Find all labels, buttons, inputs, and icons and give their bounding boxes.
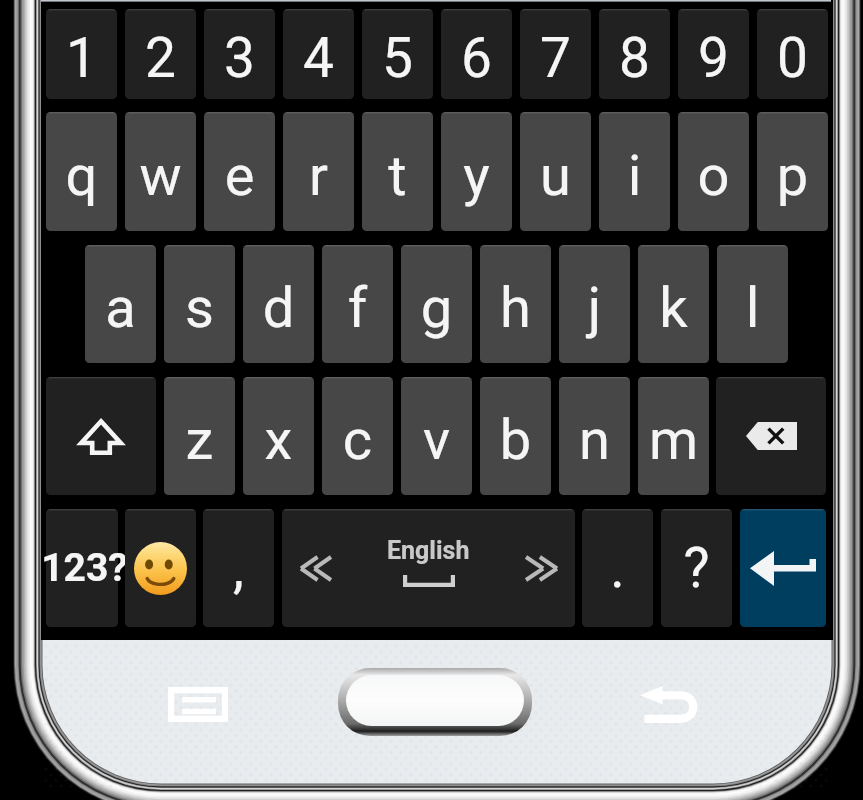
button[interactable]: c bbox=[322, 377, 393, 495]
button[interactable]: j bbox=[559, 245, 630, 363]
button[interactable]: . bbox=[582, 509, 653, 627]
staticText: i bbox=[599, 143, 670, 209]
button[interactable]: Enter bbox=[740, 509, 826, 627]
staticText: y bbox=[441, 143, 512, 209]
button[interactable]: f bbox=[322, 245, 393, 363]
button[interactable]: Delete bbox=[716, 377, 826, 495]
staticText: 2 bbox=[125, 26, 196, 90]
staticText: h bbox=[480, 275, 551, 341]
staticText: d bbox=[243, 275, 314, 341]
staticText: n bbox=[559, 407, 630, 473]
staticText: 3 bbox=[204, 26, 275, 90]
button[interactable]: 5 bbox=[362, 9, 433, 99]
button[interactable]: Shift bbox=[46, 377, 156, 495]
button[interactable]: 6 bbox=[441, 9, 512, 99]
staticText: r bbox=[283, 143, 354, 209]
button[interactable]: q bbox=[46, 112, 117, 231]
staticText: j bbox=[559, 275, 630, 341]
button[interactable]: p bbox=[757, 112, 828, 231]
button[interactable]: e bbox=[204, 112, 275, 231]
button[interactable]: u bbox=[520, 112, 591, 231]
staticText: k bbox=[638, 275, 709, 341]
button[interactable]: Space bbox=[282, 509, 575, 627]
staticText: b bbox=[480, 407, 551, 473]
button[interactable]: 7 bbox=[520, 9, 591, 99]
staticText: x bbox=[243, 407, 314, 473]
button[interactable]: l bbox=[717, 245, 788, 363]
button[interactable]: h bbox=[480, 245, 551, 363]
button[interactable]: ? bbox=[661, 509, 732, 627]
button[interactable]: 123? bbox=[46, 509, 118, 627]
button[interactable]: x bbox=[243, 377, 314, 495]
staticText: 1 bbox=[46, 26, 117, 90]
staticText: a bbox=[85, 275, 156, 341]
button[interactable]: a bbox=[85, 245, 156, 363]
staticText: o bbox=[678, 143, 749, 209]
staticText: e bbox=[204, 143, 275, 209]
staticText: f bbox=[322, 275, 393, 341]
staticText: w bbox=[125, 143, 196, 209]
button[interactable]: 8 bbox=[599, 9, 670, 99]
button[interactable]: k bbox=[638, 245, 709, 363]
button[interactable]: w bbox=[125, 112, 196, 231]
button[interactable]: 1 bbox=[46, 9, 117, 99]
staticText: p bbox=[757, 143, 828, 209]
button[interactable]: z bbox=[164, 377, 235, 495]
button[interactable]: m bbox=[638, 377, 709, 495]
button[interactable]: r bbox=[283, 112, 354, 231]
button[interactable]: Back bbox=[628, 664, 708, 744]
staticText: z bbox=[164, 407, 235, 473]
button[interactable]: Home bbox=[341, 668, 532, 737]
staticText: English bbox=[387, 536, 470, 565]
staticText: l bbox=[717, 275, 788, 341]
staticText: 8 bbox=[599, 26, 670, 90]
staticText: q bbox=[46, 143, 117, 209]
button[interactable]: v bbox=[401, 377, 472, 495]
button[interactable]: 3 bbox=[204, 9, 275, 99]
staticText: 5 bbox=[362, 26, 433, 90]
button[interactable]: y bbox=[441, 112, 512, 231]
staticText: t bbox=[362, 143, 433, 209]
button[interactable]: 2 bbox=[125, 9, 196, 99]
staticText: 0 bbox=[757, 26, 828, 90]
button[interactable]: o bbox=[678, 112, 749, 231]
staticText: u bbox=[520, 143, 591, 209]
staticText: s bbox=[164, 275, 235, 341]
staticText: 7 bbox=[520, 26, 591, 90]
staticText: 9 bbox=[678, 26, 749, 90]
staticText: ? bbox=[661, 536, 732, 600]
staticText: 6 bbox=[441, 26, 512, 90]
staticText: . bbox=[582, 536, 653, 600]
staticText: v bbox=[401, 407, 472, 473]
button[interactable]: 4 bbox=[283, 9, 354, 99]
button[interactable]: i bbox=[599, 112, 670, 231]
staticText: 123? bbox=[41, 545, 113, 591]
button[interactable]: d bbox=[243, 245, 314, 363]
button[interactable]: g bbox=[401, 245, 472, 363]
button[interactable]: b bbox=[480, 377, 551, 495]
button[interactable]: 0 bbox=[757, 9, 828, 99]
staticText: , bbox=[203, 536, 274, 600]
staticText: g bbox=[401, 275, 472, 341]
staticText: 4 bbox=[283, 26, 354, 90]
button[interactable]: Emoji bbox=[125, 509, 196, 627]
button[interactable]: t bbox=[362, 112, 433, 231]
staticText: c bbox=[322, 407, 393, 473]
button[interactable]: , bbox=[203, 509, 274, 627]
button[interactable]: 9 bbox=[678, 9, 749, 99]
button[interactable]: n bbox=[559, 377, 630, 495]
button[interactable]: Menu bbox=[158, 664, 238, 744]
staticText: m bbox=[638, 407, 709, 473]
button[interactable]: s bbox=[164, 245, 235, 363]
